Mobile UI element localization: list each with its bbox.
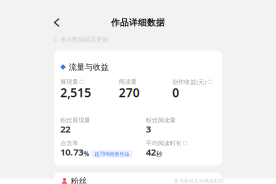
staticText: 粉丝展现量 [60, 116, 90, 124]
staticText: 10.73 [60, 146, 83, 158]
staticText: 展现量 [60, 78, 78, 86]
staticText: 0 [172, 84, 179, 101]
staticText: 流量与收益 [69, 62, 109, 72]
staticText: 多与粉丝互动增加粘性 [174, 178, 224, 184]
staticText: 阅读量 [119, 78, 137, 86]
staticText: 2,515 [60, 84, 91, 101]
staticText: 270 [119, 84, 140, 101]
staticText: 粉丝阅读量 [146, 116, 176, 124]
staticText: 作品详细数据 [111, 17, 165, 28]
staticText: 秒 [156, 150, 162, 158]
staticText: 创作收益(元) [172, 78, 206, 86]
staticText: 表示数据延迟更新 [60, 36, 108, 43]
staticText: % [84, 150, 89, 158]
staticText: 42 [146, 146, 156, 158]
staticText: 超79%同类作品 [94, 151, 129, 157]
button[interactable]: 返回 [48, 13, 65, 32]
staticText: 粉丝 [71, 176, 87, 184]
staticText: 22 [60, 123, 70, 135]
staticText: 3 [146, 123, 151, 135]
staticText: 点击率 [60, 139, 78, 147]
staticText: 平均阅读时长 [146, 139, 182, 147]
